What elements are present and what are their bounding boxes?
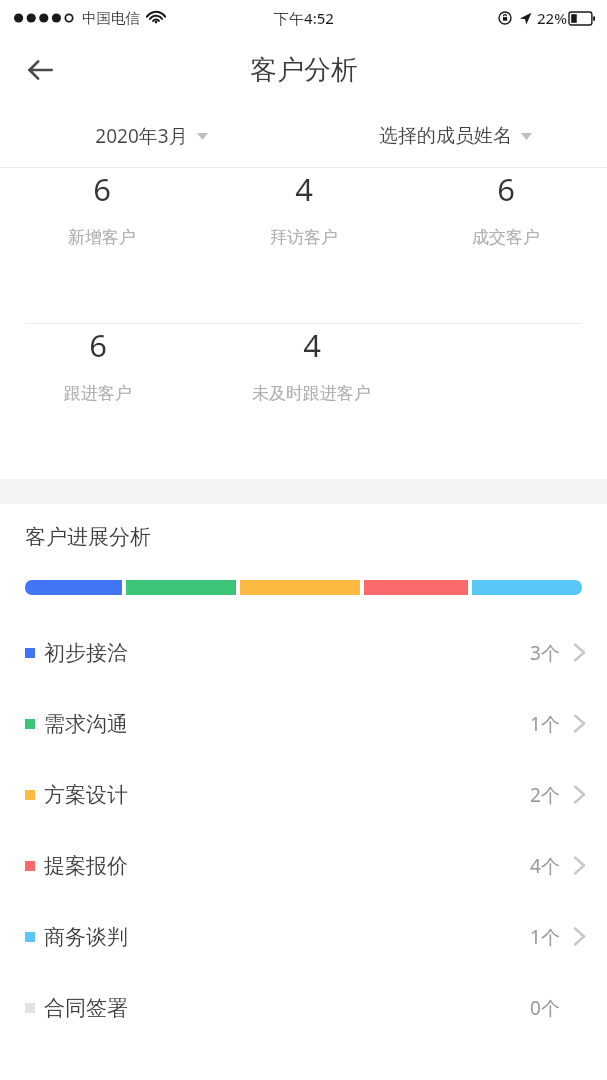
- staticText: 方案设计: [44, 782, 128, 808]
- staticText: 成交客户: [472, 227, 540, 248]
- button[interactable]: 商务谈判: [0, 901, 607, 972]
- button[interactable]: 6: [0, 168, 203, 248]
- staticText: 跟进客户: [64, 383, 132, 404]
- button[interactable]: 选择的成员姓名: [369, 116, 542, 156]
- button[interactable]: 4: [196, 324, 427, 404]
- button[interactable]: 初步接洽: [0, 617, 607, 688]
- staticText: 0个: [530, 995, 560, 1021]
- staticText: 新增客户: [68, 227, 136, 248]
- button[interactable]: 4: [203, 168, 405, 248]
- staticText: 初步接洽: [44, 640, 128, 666]
- button[interactable]: 提案报价: [0, 830, 607, 901]
- staticText: 中国电信: [82, 9, 140, 27]
- staticText: 1个: [530, 711, 560, 737]
- staticText: 合同签署: [44, 995, 128, 1021]
- button[interactable]: 需求沟通: [0, 688, 607, 759]
- staticText: 6: [93, 168, 111, 210]
- staticText: 2个: [530, 782, 560, 808]
- staticText: 提案报价: [44, 853, 128, 879]
- staticText: 客户进展分析: [25, 524, 151, 550]
- staticText: 6: [89, 324, 107, 366]
- staticText: 拜访客户: [270, 227, 338, 248]
- staticText: 6: [497, 168, 515, 210]
- button[interactable]: 返回: [14, 44, 66, 96]
- button[interactable]: 方案设计: [0, 759, 607, 830]
- staticText: 22%: [537, 8, 567, 28]
- staticText: 未及时跟进客户: [252, 383, 371, 404]
- staticText: 1个: [530, 924, 560, 950]
- button[interactable]: 合同签署: [0, 972, 607, 1043]
- staticText: 4: [295, 168, 313, 210]
- staticText: 选择的成员姓名: [379, 124, 512, 148]
- staticText: 商务谈判: [44, 924, 128, 950]
- staticText: 4: [303, 324, 321, 366]
- staticText: 4个: [530, 853, 560, 879]
- staticText: 3个: [530, 640, 560, 666]
- staticText: 客户分析: [250, 53, 358, 87]
- staticText: 需求沟通: [44, 711, 128, 737]
- button[interactable]: 6: [405, 168, 607, 248]
- button[interactable]: 6: [0, 324, 196, 404]
- staticText: 2020年3月: [95, 123, 188, 149]
- staticText: 下午4:52: [274, 8, 334, 28]
- button[interactable]: 2020年3月: [85, 115, 218, 157]
